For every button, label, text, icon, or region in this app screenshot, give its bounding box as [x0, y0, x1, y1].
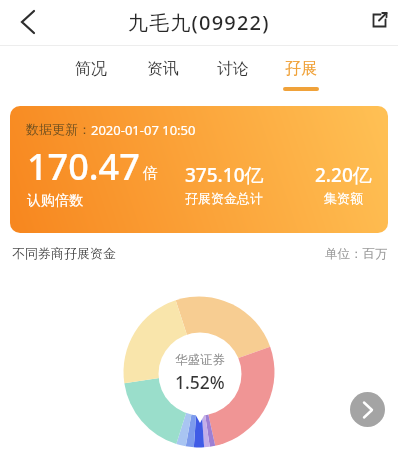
- button[interactable]: [350, 392, 385, 427]
- button[interactable]: [10, 4, 46, 40]
- staticText: 2.20亿: [315, 162, 372, 188]
- staticText: 倍: [143, 164, 158, 183]
- staticText: 简况: [75, 59, 107, 79]
- staticText: 认购倍数: [27, 192, 83, 210]
- staticText: 孖展资金总计: [185, 190, 263, 206]
- button[interactable]: 资讯: [133, 52, 193, 86]
- staticText: 资讯: [147, 59, 179, 79]
- staticText: 单位：百万: [325, 246, 388, 262]
- button[interactable]: 简况: [61, 52, 121, 86]
- staticText: 170.47: [27, 142, 140, 191]
- button[interactable]: 数据更新：: [10, 106, 388, 233]
- staticText: 数据更新：: [26, 121, 91, 137]
- staticText: 2020-01-07 10:50: [91, 121, 196, 139]
- button[interactable]: [366, 7, 392, 33]
- button[interactable]: 孖展: [271, 52, 331, 86]
- staticText: 375.10亿: [185, 162, 264, 188]
- staticText: 九毛九(09922): [128, 9, 270, 36]
- staticText: 讨论: [217, 59, 249, 79]
- staticText: 集资额: [324, 190, 363, 206]
- button[interactable]: 讨论: [203, 52, 263, 86]
- staticText: 1.52%: [175, 370, 225, 394]
- staticText: 华盛证券: [175, 352, 225, 368]
- staticText: 孖展: [285, 59, 317, 79]
- staticText: 不同券商孖展资金: [12, 245, 116, 261]
